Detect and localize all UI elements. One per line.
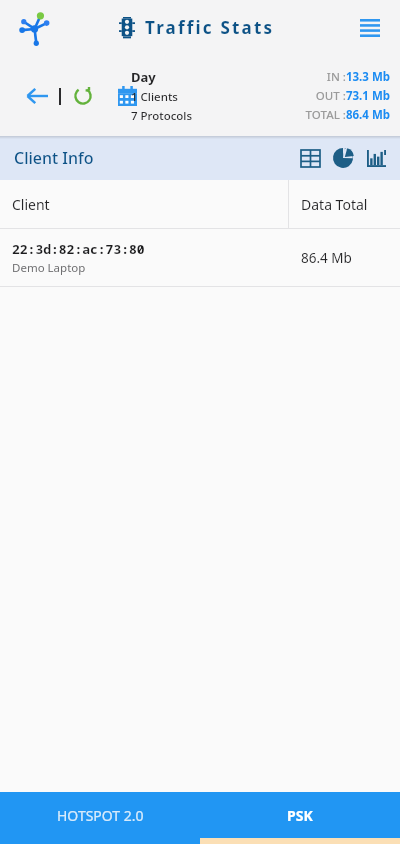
- button[interactable]: 22:3d:82:ac:73:80: [0, 229, 400, 286]
- button[interactable]: Select date: [112, 81, 142, 111]
- staticText: 86.4 Mb: [301, 249, 352, 267]
- button[interactable]: App logo: [12, 4, 60, 52]
- button[interactable]: Pie chart view: [329, 144, 357, 172]
- button[interactable]: Bar chart view: [362, 144, 390, 172]
- button[interactable]: Back: [22, 81, 52, 111]
- button[interactable]: HOTSPOT 2.0: [0, 792, 200, 838]
- staticText: Day: [131, 68, 156, 86]
- staticText: 7 Protocols: [131, 108, 193, 124]
- staticText: Traffic Stats: [145, 16, 275, 39]
- staticText: 22:3d:82:ac:73:80: [12, 240, 145, 258]
- staticText: Demo Laptop: [12, 260, 86, 276]
- staticText: Data Total: [301, 195, 368, 214]
- button[interactable]: Menu: [350, 8, 390, 48]
- staticText: HOTSPOT 2.0: [57, 806, 144, 825]
- staticText: Client: [12, 195, 50, 214]
- staticText: 1 Clients: [131, 89, 178, 105]
- staticText: PSK: [287, 806, 313, 825]
- button[interactable]: Table view: [296, 144, 324, 172]
- button[interactable]: PSK: [200, 792, 400, 838]
- staticText: IN :13.3 Mb: [326, 69, 390, 85]
- staticText: OUT :73.1 Mb: [315, 88, 390, 104]
- staticText: Client Info: [14, 147, 94, 169]
- staticText: TOTAL :86.4 Mb: [305, 107, 390, 123]
- button[interactable]: Refresh: [68, 81, 98, 111]
